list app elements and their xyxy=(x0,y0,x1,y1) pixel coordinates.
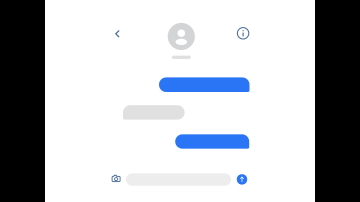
button[interactable]: Details xyxy=(235,25,252,42)
button[interactable]: Back xyxy=(108,24,128,44)
button[interactable]: Send xyxy=(237,174,247,185)
button[interactable]: Camera xyxy=(110,172,122,184)
